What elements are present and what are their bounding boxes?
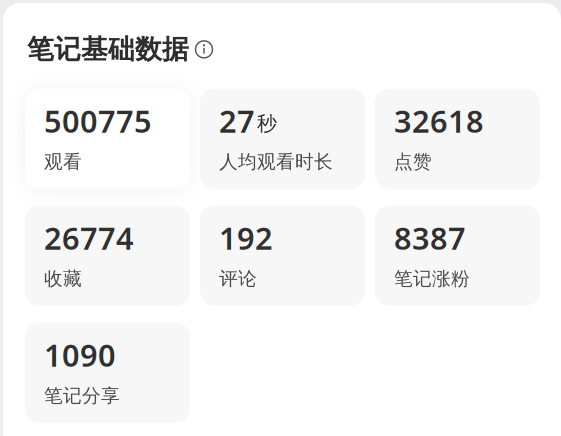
staticText: 32618	[394, 101, 484, 141]
staticText: 收藏	[44, 267, 82, 290]
staticText: 笔记基础数据	[27, 33, 189, 66]
staticText: 笔记分享	[44, 384, 120, 407]
button[interactable]: 关于笔记基础数据	[189, 36, 219, 62]
staticText: 笔记涨粉	[394, 267, 470, 290]
button[interactable]: 8387	[375, 206, 540, 306]
staticText: 观看	[44, 150, 82, 173]
staticText: 点赞	[394, 150, 432, 173]
staticText: 人均观看时长	[219, 150, 333, 173]
button[interactable]: 500775	[25, 89, 190, 189]
button[interactable]: 1090	[25, 323, 190, 423]
staticText: 1090	[44, 335, 116, 375]
button[interactable]: 192	[200, 206, 365, 306]
staticText: 8387	[394, 218, 466, 258]
staticText: 192	[219, 218, 273, 258]
staticText: 27	[219, 101, 255, 141]
button[interactable]: 27	[200, 89, 365, 189]
staticText: 500775	[44, 101, 152, 141]
button[interactable]: 26774	[25, 206, 190, 306]
staticText: 26774	[44, 218, 134, 258]
staticText: 秒	[257, 111, 277, 136]
button[interactable]: 32618	[375, 89, 540, 189]
staticText: 评论	[219, 267, 257, 290]
